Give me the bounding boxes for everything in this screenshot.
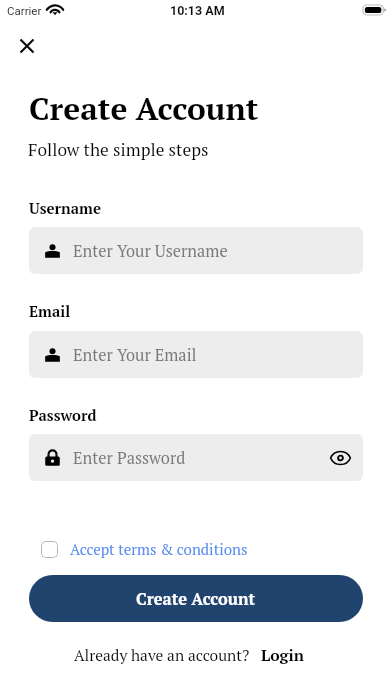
staticText: Already have an account? [74, 645, 250, 666]
staticText: Create Account [29, 87, 259, 129]
staticText: 10:13 AM [170, 3, 225, 18]
button[interactable]: Create Account [29, 575, 363, 622]
staticText: Follow the simple steps [28, 138, 209, 161]
staticText: Username [29, 198, 101, 218]
staticText: Accept terms & conditions [70, 539, 248, 559]
staticText: Password [29, 405, 97, 425]
button[interactable]: Enter Password [29, 434, 363, 481]
staticText: Carrier [7, 4, 42, 17]
button[interactable]: Close [13, 32, 41, 60]
button[interactable]: Enter Your Email [29, 331, 363, 378]
button[interactable]: Enter Your Username [29, 227, 363, 274]
button[interactable]: Accept terms & conditions [41, 539, 248, 559]
staticText: Email [29, 301, 71, 321]
button[interactable]: Login [261, 645, 304, 666]
staticText: Login [261, 645, 304, 666]
staticText: Enter Your Email [73, 344, 197, 366]
staticText: Create Account [136, 588, 256, 610]
staticText: Enter Password [73, 447, 186, 469]
button[interactable]: Show password [328, 446, 352, 470]
staticText: Enter Your Username [73, 240, 228, 262]
